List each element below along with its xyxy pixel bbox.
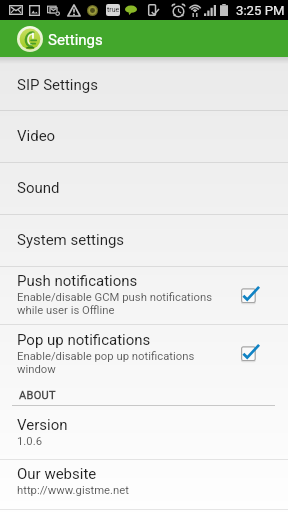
staticText: Push notifications	[17, 272, 138, 290]
button[interactable]: Video	[0, 111, 288, 162]
staticText: Sound	[17, 179, 60, 197]
staticText: Settings	[48, 31, 103, 49]
staticText: System settings	[17, 231, 125, 249]
staticText: Version	[17, 416, 68, 434]
button[interactable]: Toggle notification	[241, 344, 261, 364]
staticText: Our website	[17, 465, 97, 483]
staticText: http://www.gistme.net	[17, 484, 129, 497]
staticText: Pop up notifications	[17, 331, 151, 349]
staticText: SIP Settings	[17, 76, 98, 94]
staticText: Enable/disable pop up notifications wind…	[17, 350, 195, 375]
button[interactable]: Push notifications	[0, 267, 288, 324]
button[interactable]: Sound	[0, 163, 288, 214]
staticText: Video	[17, 127, 56, 145]
staticText: 3:25 PM	[236, 3, 285, 18]
staticText: ABOUT	[19, 389, 56, 402]
button[interactable]: Version	[0, 406, 288, 459]
staticText: 1.0.6	[17, 435, 43, 448]
button[interactable]: App logo	[17, 26, 43, 52]
button[interactable]: System settings	[0, 215, 288, 266]
staticText: true	[107, 6, 120, 14]
staticText: Enable/disable GCM push notifications wh…	[17, 291, 213, 316]
button[interactable]: Our website	[0, 460, 288, 509]
button[interactable]: Pop up notifications	[0, 325, 288, 382]
button[interactable]: SIP Settings	[0, 57, 288, 110]
button[interactable]: Toggle notification	[241, 286, 261, 306]
